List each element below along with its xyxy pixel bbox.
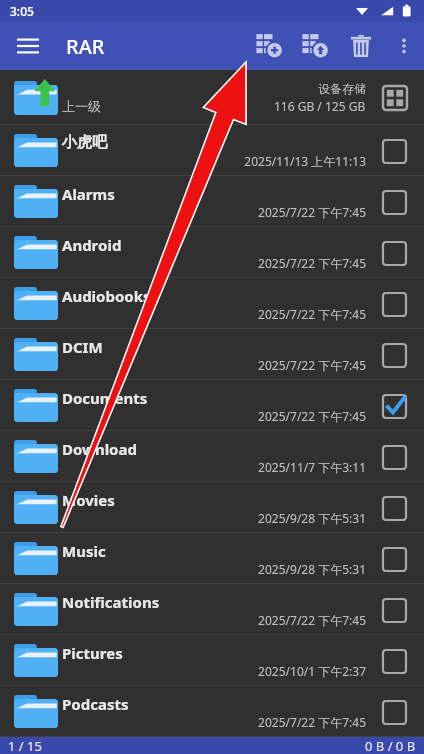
staticText: 2025/7/22 下午7:45 [258, 306, 366, 322]
button[interactable]: 上一级 [0, 70, 424, 125]
staticText: 2025/11/13 上午11:13 [244, 153, 366, 169]
button[interactable]: Select [375, 336, 413, 374]
button[interactable]: Movies [0, 482, 424, 533]
staticText: Alarms [62, 184, 115, 204]
staticText: 小虎吧 [62, 133, 107, 152]
staticText: 2025/7/22 下午7:45 [258, 255, 366, 271]
button[interactable]: Extract [292, 23, 338, 69]
staticText: RAR [66, 33, 105, 60]
staticText: Android [62, 235, 122, 255]
staticText: 2025/9/28 下午5:31 [258, 510, 366, 526]
button[interactable]: Music [0, 533, 424, 584]
staticText: 116 GB / 125 GB [274, 98, 366, 114]
button[interactable]: Select [375, 438, 413, 476]
button[interactable]: Notifications [0, 584, 424, 635]
staticText: 0 B / 0 B [365, 737, 416, 754]
button[interactable]: Delete [338, 23, 384, 69]
staticText: Pictures [62, 643, 123, 663]
staticText: Download [62, 439, 137, 459]
staticText: 2025/11/7 下午3:11 [258, 459, 366, 475]
button[interactable]: Android [0, 227, 424, 278]
button[interactable]: Select [375, 540, 413, 578]
staticText: 2025/7/22 下午7:45 [258, 204, 366, 220]
button[interactable]: Grid view [376, 79, 414, 117]
button[interactable]: DCIM [0, 329, 424, 380]
button[interactable]: Alarms [0, 176, 424, 227]
staticText: 3:05 [10, 3, 34, 19]
staticText: 2025/7/22 下午7:45 [258, 357, 366, 373]
staticText: Notifications [62, 592, 160, 612]
button[interactable]: Select [375, 489, 413, 527]
button[interactable]: Download [0, 431, 424, 482]
button[interactable]: Podcasts [0, 686, 424, 737]
button[interactable]: Add to archive [246, 23, 292, 69]
staticText: Podcasts [62, 694, 129, 714]
staticText: DCIM [62, 337, 103, 357]
staticText: 2025/9/28 下午5:31 [258, 561, 366, 577]
button[interactable]: More options [384, 26, 424, 66]
button[interactable]: Select [375, 642, 413, 680]
staticText: Movies [62, 490, 115, 510]
button[interactable]: Select [375, 591, 413, 629]
button[interactable]: Select [375, 132, 413, 170]
staticText: 上一级 [62, 98, 101, 114]
staticText: 设备存储 [318, 81, 366, 96]
staticText: 2025/7/22 下午7:45 [258, 714, 366, 730]
staticText: Documents [62, 388, 148, 408]
button[interactable]: Pictures [0, 635, 424, 686]
staticText: 2025/7/22 下午7:45 [258, 408, 366, 424]
staticText: Audiobooks [62, 286, 151, 306]
button[interactable]: Selected [375, 387, 413, 425]
button[interactable]: 小虎吧 [0, 125, 424, 176]
button[interactable]: Menu [8, 26, 48, 66]
button[interactable]: Select [375, 285, 413, 323]
staticText: Music [62, 541, 106, 561]
staticText: 1 / 15 [8, 737, 42, 754]
staticText: 2025/7/22 下午7:45 [258, 612, 366, 628]
button[interactable]: Audiobooks [0, 278, 424, 329]
staticText: 2025/10/1 下午2:37 [258, 663, 366, 679]
button[interactable]: Select [375, 183, 413, 221]
button[interactable]: Documents [0, 380, 424, 431]
button[interactable]: Select [375, 693, 413, 731]
button[interactable]: Select [375, 234, 413, 272]
